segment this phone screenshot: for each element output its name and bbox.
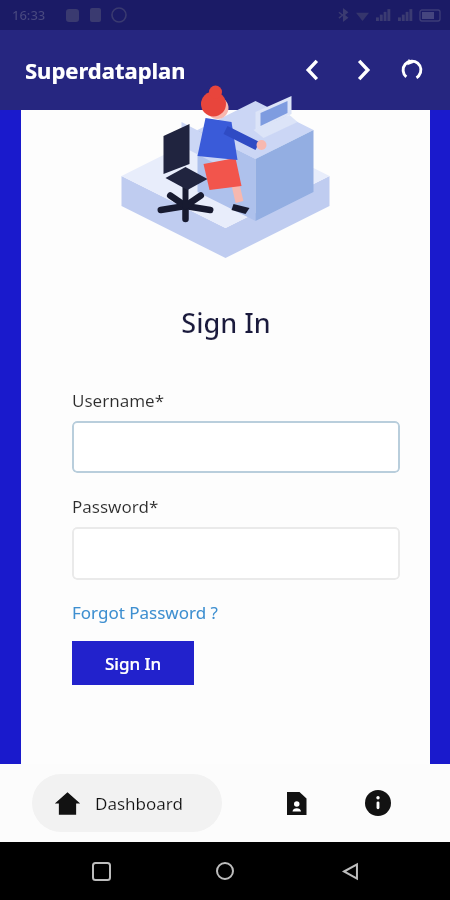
staticText: Dashboard	[95, 792, 184, 815]
staticText: Password*	[72, 495, 159, 518]
button[interactable]	[72, 527, 400, 580]
button[interactable]	[72, 421, 400, 473]
staticText: Sign In	[181, 304, 271, 341]
button[interactable]: Back	[326, 847, 374, 895]
button[interactable]: Dashboard	[32, 774, 222, 832]
button[interactable]: Forgot Password ?	[72, 601, 218, 624]
button[interactable]: Documents	[268, 775, 324, 831]
button[interactable]: Recents	[77, 847, 125, 895]
staticText: Sign In	[105, 652, 162, 675]
button[interactable]: Sign In	[72, 641, 194, 685]
button[interactable]: Forward	[338, 45, 388, 95]
button[interactable]: Refresh	[388, 46, 436, 94]
staticText: Superdataplan	[25, 55, 186, 85]
button[interactable]: Info	[350, 775, 406, 831]
staticText: Username*	[72, 389, 165, 412]
staticText: Forgot Password ?	[72, 601, 218, 624]
staticText: 16:33	[12, 6, 46, 24]
button[interactable]: Back	[288, 45, 338, 95]
button[interactable]: Home	[201, 847, 249, 895]
